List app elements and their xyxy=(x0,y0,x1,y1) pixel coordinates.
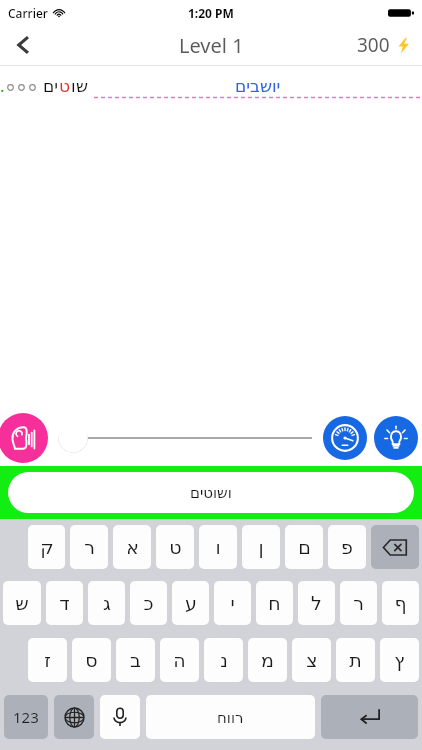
staticText: Level 1 xyxy=(179,32,244,59)
button[interactable]: ר xyxy=(340,581,377,625)
staticText: ר xyxy=(353,592,364,614)
staticText: ד xyxy=(59,592,70,614)
button[interactable]: נ xyxy=(204,638,243,682)
staticText: ג xyxy=(103,592,111,614)
staticText: 123 xyxy=(13,707,39,727)
staticText: ן xyxy=(258,536,264,558)
button[interactable]: Dictate xyxy=(100,695,140,739)
button[interactable]: י xyxy=(214,581,251,625)
button[interactable]: 123 xyxy=(4,695,48,739)
button[interactable]: ס xyxy=(72,638,111,682)
staticText: נ xyxy=(220,649,228,671)
staticText: צ xyxy=(306,649,318,671)
button[interactable]: ז xyxy=(28,638,67,682)
button[interactable]: מ xyxy=(248,638,287,682)
button[interactable]: Change keyboard xyxy=(54,695,94,739)
button[interactable]: ט xyxy=(156,525,194,569)
button[interactable]: ם xyxy=(285,525,323,569)
staticText: רווח xyxy=(217,709,244,726)
button[interactable]: 300 xyxy=(357,32,412,58)
staticText: ע xyxy=(185,592,197,614)
staticText: ה xyxy=(173,649,186,671)
button[interactable]: ץ xyxy=(380,638,419,682)
staticText: ר xyxy=(84,536,95,558)
staticText: כ xyxy=(143,592,154,614)
staticText: 1:20 PM xyxy=(188,5,234,21)
staticText: ף xyxy=(394,592,407,614)
button[interactable]: ע xyxy=(172,581,209,625)
staticText: ת xyxy=(349,649,362,671)
button[interactable]: פ xyxy=(328,525,366,569)
staticText: ט xyxy=(169,536,182,558)
button[interactable]: א xyxy=(113,525,151,569)
staticText: ח xyxy=(268,592,281,614)
staticText: ק xyxy=(40,536,54,558)
staticText: ש xyxy=(76,76,89,96)
button[interactable]: צ xyxy=(292,638,331,682)
staticText: ם xyxy=(298,536,311,558)
button[interactable]: ק xyxy=(28,525,65,569)
button[interactable]: ב xyxy=(116,638,155,682)
staticText: ו xyxy=(71,76,76,96)
staticText: 300 xyxy=(357,32,390,58)
staticText: ץ xyxy=(394,649,405,671)
button[interactable]: ן xyxy=(242,525,280,569)
staticText: יושבים xyxy=(235,76,281,96)
button[interactable]: Speed xyxy=(323,416,367,460)
staticText: א xyxy=(126,536,139,558)
button[interactable]: ו xyxy=(199,525,237,569)
staticText: י xyxy=(230,592,235,614)
button[interactable]: ג xyxy=(88,581,125,625)
button[interactable]: כ xyxy=(130,581,167,625)
button[interactable]: ר xyxy=(70,525,108,569)
button[interactable] xyxy=(58,416,312,460)
button[interactable]: ה xyxy=(160,638,199,682)
staticText: פ xyxy=(341,536,353,558)
staticText: . xyxy=(0,74,5,97)
staticText: ל xyxy=(311,592,322,614)
button[interactable]: ד xyxy=(46,581,83,625)
button[interactable]: ש xyxy=(3,581,41,625)
staticText: מ xyxy=(261,649,274,671)
button[interactable]: ת xyxy=(336,638,375,682)
button[interactable]: Speak sentence xyxy=(0,413,48,463)
button[interactable]: ף xyxy=(382,581,419,625)
button[interactable]: Return xyxy=(321,695,418,739)
staticText: Carrier xyxy=(8,5,48,21)
button[interactable]: ושוטים xyxy=(8,472,414,513)
button[interactable]: Hint xyxy=(374,416,418,460)
staticText: ש xyxy=(15,592,29,614)
button[interactable]: רווח xyxy=(146,695,315,739)
staticText: ים xyxy=(43,76,59,96)
staticText: ט xyxy=(59,76,71,96)
staticText: ב xyxy=(130,649,141,671)
button[interactable]: ל xyxy=(298,581,335,625)
staticText: ו xyxy=(215,536,221,558)
staticText: ושוטים xyxy=(190,484,232,501)
button[interactable]: Back xyxy=(0,25,48,65)
button[interactable]: Backspace xyxy=(371,525,419,569)
staticText: ז xyxy=(44,649,51,671)
button[interactable]: ח xyxy=(256,581,293,625)
staticText: ס xyxy=(85,649,98,671)
